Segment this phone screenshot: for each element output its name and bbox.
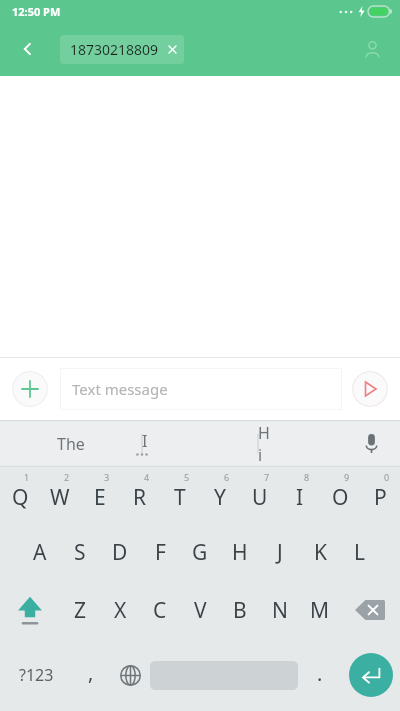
staticText: S xyxy=(74,538,86,567)
staticText: 8 xyxy=(304,471,310,483)
button[interactable]: F xyxy=(140,523,180,581)
button[interactable]: Change language xyxy=(110,639,150,711)
button[interactable]: A xyxy=(20,523,60,581)
staticText: 3 xyxy=(104,471,110,483)
staticText: 6 xyxy=(224,471,230,483)
staticText: , xyxy=(88,659,94,686)
staticText: H xyxy=(232,538,248,567)
button[interactable]: , xyxy=(72,639,110,711)
button[interactable]: 3 xyxy=(80,467,120,523)
button[interactable]: 18730218809 xyxy=(60,35,184,64)
button[interactable]: 5 xyxy=(160,467,200,523)
button[interactable]: The xyxy=(0,420,142,467)
staticText: E xyxy=(94,483,106,512)
staticText: . xyxy=(317,660,323,687)
staticText: D xyxy=(112,538,128,567)
staticText: Z xyxy=(74,596,87,625)
staticText: 2 xyxy=(64,471,70,483)
button[interactable]: D xyxy=(100,523,140,581)
staticText: 4 xyxy=(144,471,150,483)
button[interactable]: B xyxy=(220,581,260,639)
button[interactable]: Contact details xyxy=(352,29,392,69)
button[interactable]: 6 xyxy=(200,467,240,523)
button[interactable]: 0 xyxy=(360,467,400,523)
button[interactable]: X xyxy=(100,581,140,639)
staticText: Y xyxy=(214,483,226,512)
staticText: R xyxy=(133,483,147,512)
button[interactable]: C xyxy=(140,581,180,639)
staticText: J xyxy=(277,538,283,567)
button[interactable]: L xyxy=(340,523,380,581)
staticText: T xyxy=(174,483,186,512)
button[interactable]: . xyxy=(298,639,342,711)
button[interactable]: K xyxy=(300,523,340,581)
staticText: O xyxy=(332,483,349,512)
button[interactable]: J xyxy=(260,523,300,581)
staticText: 0 xyxy=(384,471,390,483)
button[interactable]: Send xyxy=(352,371,388,407)
staticText: 1 xyxy=(24,471,30,483)
button[interactable]: 2 xyxy=(40,467,80,523)
staticText: W xyxy=(50,483,70,512)
button[interactable]: 7 xyxy=(240,467,280,523)
staticText: Text message xyxy=(72,379,168,399)
staticText: 7 xyxy=(264,471,270,483)
staticText: 12:50 PM xyxy=(12,4,61,19)
staticText: 9 xyxy=(344,471,350,483)
button[interactable]: S xyxy=(60,523,100,581)
staticText: U xyxy=(252,483,268,512)
button[interactable]: N xyxy=(260,581,300,639)
button[interactable]: M xyxy=(300,581,340,639)
button[interactable]: 9 xyxy=(320,467,360,523)
button[interactable]: H xyxy=(220,523,260,581)
staticText: L xyxy=(354,538,366,567)
staticText: X xyxy=(114,596,127,625)
staticText: P xyxy=(374,483,387,512)
button[interactable]: 1 xyxy=(0,467,40,523)
staticText: K xyxy=(314,538,327,567)
staticText: C xyxy=(153,596,167,625)
button[interactable]: V xyxy=(180,581,220,639)
button[interactable]: Voice input xyxy=(342,420,400,467)
button[interactable]: 8 xyxy=(280,467,320,523)
button[interactable]: Enter xyxy=(342,639,400,711)
staticText: Q xyxy=(12,483,29,512)
staticText: B xyxy=(233,596,247,625)
button[interactable]: Shift xyxy=(0,581,60,639)
button[interactable]: Z xyxy=(60,581,100,639)
button[interactable]: Add attachment xyxy=(12,371,48,407)
staticText: N xyxy=(272,596,288,625)
button[interactable]: Backspace xyxy=(340,581,400,639)
button[interactable]: G xyxy=(180,523,220,581)
button[interactable]: Space xyxy=(150,651,298,699)
button[interactable]: 4 xyxy=(120,467,160,523)
staticText: M xyxy=(310,596,330,625)
staticText: I xyxy=(296,483,304,512)
staticText: V xyxy=(194,596,207,625)
button[interactable]: Text message xyxy=(60,368,342,410)
staticText: F xyxy=(155,538,166,567)
button[interactable]: Back xyxy=(8,29,48,69)
staticText: The xyxy=(57,433,85,455)
staticText: A xyxy=(33,538,47,567)
staticText: G xyxy=(192,538,208,567)
button[interactable]: ?123 xyxy=(0,639,72,711)
staticText: 18730218809 xyxy=(70,40,159,59)
staticText: ?123 xyxy=(19,664,54,686)
staticText: 5 xyxy=(184,471,190,483)
